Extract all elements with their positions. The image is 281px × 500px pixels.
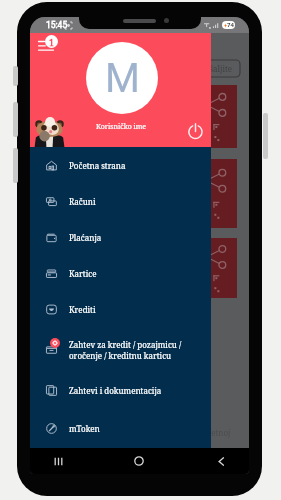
button[interactable]: Back xyxy=(208,448,234,474)
button[interactable]: Zahtevi i dokumentacija xyxy=(30,372,211,408)
staticText: 74 xyxy=(227,21,234,29)
button[interactable]: Home xyxy=(126,448,152,474)
button[interactable]: Zahtev za kredit / pozajmicu / oročenje … xyxy=(30,327,211,372)
button[interactable]: mToken xyxy=(30,408,211,448)
staticText: Plaćanja xyxy=(69,232,102,243)
button[interactable]: Log out xyxy=(181,117,209,145)
button[interactable]: Računi xyxy=(30,183,211,219)
button[interactable]: Početna strana xyxy=(30,147,211,183)
button[interactable]: Plaćanja xyxy=(30,219,211,255)
staticText: mToken xyxy=(69,423,100,434)
button[interactable]: Open menu xyxy=(34,34,58,58)
staticText: Krediti xyxy=(69,304,96,315)
staticText: Računi xyxy=(69,196,96,207)
staticText: Zahtev za kredit / pozajmicu / oročenje … xyxy=(69,339,182,361)
staticText: Korisničko ime xyxy=(96,122,147,132)
staticText: Zahtevi i dokumentacija xyxy=(69,385,162,396)
staticText: Kartice xyxy=(69,268,97,279)
staticText: M xyxy=(105,55,140,102)
button[interactable]: Kartice xyxy=(30,255,211,291)
staticText: 1 xyxy=(49,36,55,48)
staticText: 15:45 xyxy=(46,20,68,30)
staticText: Početna strana xyxy=(69,160,126,171)
staticText: ...na početnoj xyxy=(180,427,231,438)
staticText: Pošaljite xyxy=(200,63,233,74)
button[interactable]: Krediti xyxy=(30,291,211,327)
button[interactable]: Recents xyxy=(45,448,71,474)
